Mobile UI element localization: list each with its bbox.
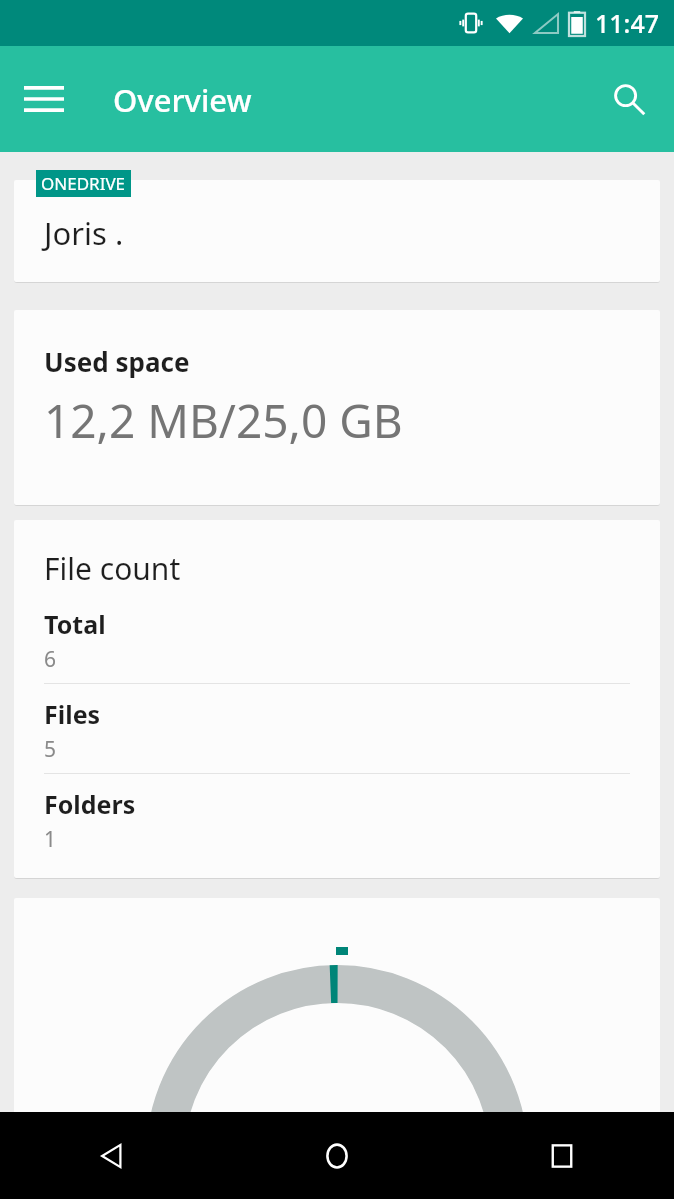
staticText: Total <box>44 607 106 641</box>
button[interactable] <box>14 898 660 1128</box>
staticText: 6 <box>44 645 57 674</box>
button[interactable]: Recent apps <box>449 1112 674 1199</box>
button[interactable]: File count <box>14 520 660 878</box>
staticText: Joris . <box>44 212 124 254</box>
button[interactable]: Total <box>44 607 630 697</box>
staticText: Files <box>44 697 101 731</box>
staticText: File count <box>44 548 181 589</box>
staticText: 12,2 MB/25,0 GB <box>44 389 403 452</box>
staticText: 1 <box>44 825 57 854</box>
staticText: 11:47 <box>595 6 660 40</box>
button[interactable]: Joris . <box>14 180 660 282</box>
button[interactable]: Used space <box>14 310 660 505</box>
button[interactable]: Files <box>44 697 630 787</box>
button[interactable]: Home <box>224 1112 449 1199</box>
staticText: ONEDRIVE <box>41 172 126 195</box>
staticText: 5 <box>44 735 57 764</box>
staticText: Used space <box>44 344 190 379</box>
button[interactable]: Back <box>0 1112 224 1199</box>
button[interactable]: Search <box>600 70 658 128</box>
button[interactable]: Folders <box>44 787 630 863</box>
button[interactable]: Open navigation menu <box>15 70 73 128</box>
staticText: Overview <box>113 79 252 121</box>
staticText: Folders <box>44 787 136 821</box>
